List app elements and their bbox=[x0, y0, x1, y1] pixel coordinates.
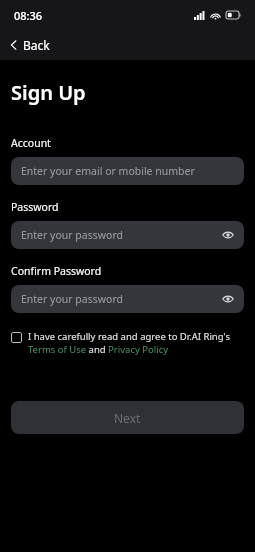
button[interactable]: Back bbox=[0, 30, 62, 60]
staticText: Confirm Password bbox=[11, 264, 102, 278]
staticText: Enter your email or mobile number bbox=[21, 164, 195, 178]
staticText: Enter your password bbox=[21, 228, 123, 242]
staticText: Password bbox=[11, 200, 59, 214]
button[interactable]: Show password bbox=[220, 227, 236, 243]
staticText: Sign Up bbox=[11, 79, 86, 106]
button[interactable]: Next bbox=[11, 401, 244, 434]
button[interactable]: Show password bbox=[220, 291, 236, 307]
staticText: I have carefully read and agree to Dr.AI… bbox=[28, 330, 244, 356]
staticText: Next bbox=[114, 410, 141, 426]
staticText: Enter your password bbox=[21, 292, 123, 306]
staticText: 08:36 bbox=[14, 8, 43, 23]
button[interactable]: I have carefully read and agree to Dr.AI… bbox=[0, 330, 255, 356]
staticText: Account bbox=[11, 136, 51, 150]
button[interactable]: Enter your password bbox=[11, 285, 244, 313]
staticText: Back bbox=[23, 37, 50, 53]
button[interactable]: Enter your password bbox=[11, 221, 244, 249]
button[interactable]: Enter your email or mobile number bbox=[11, 157, 244, 185]
